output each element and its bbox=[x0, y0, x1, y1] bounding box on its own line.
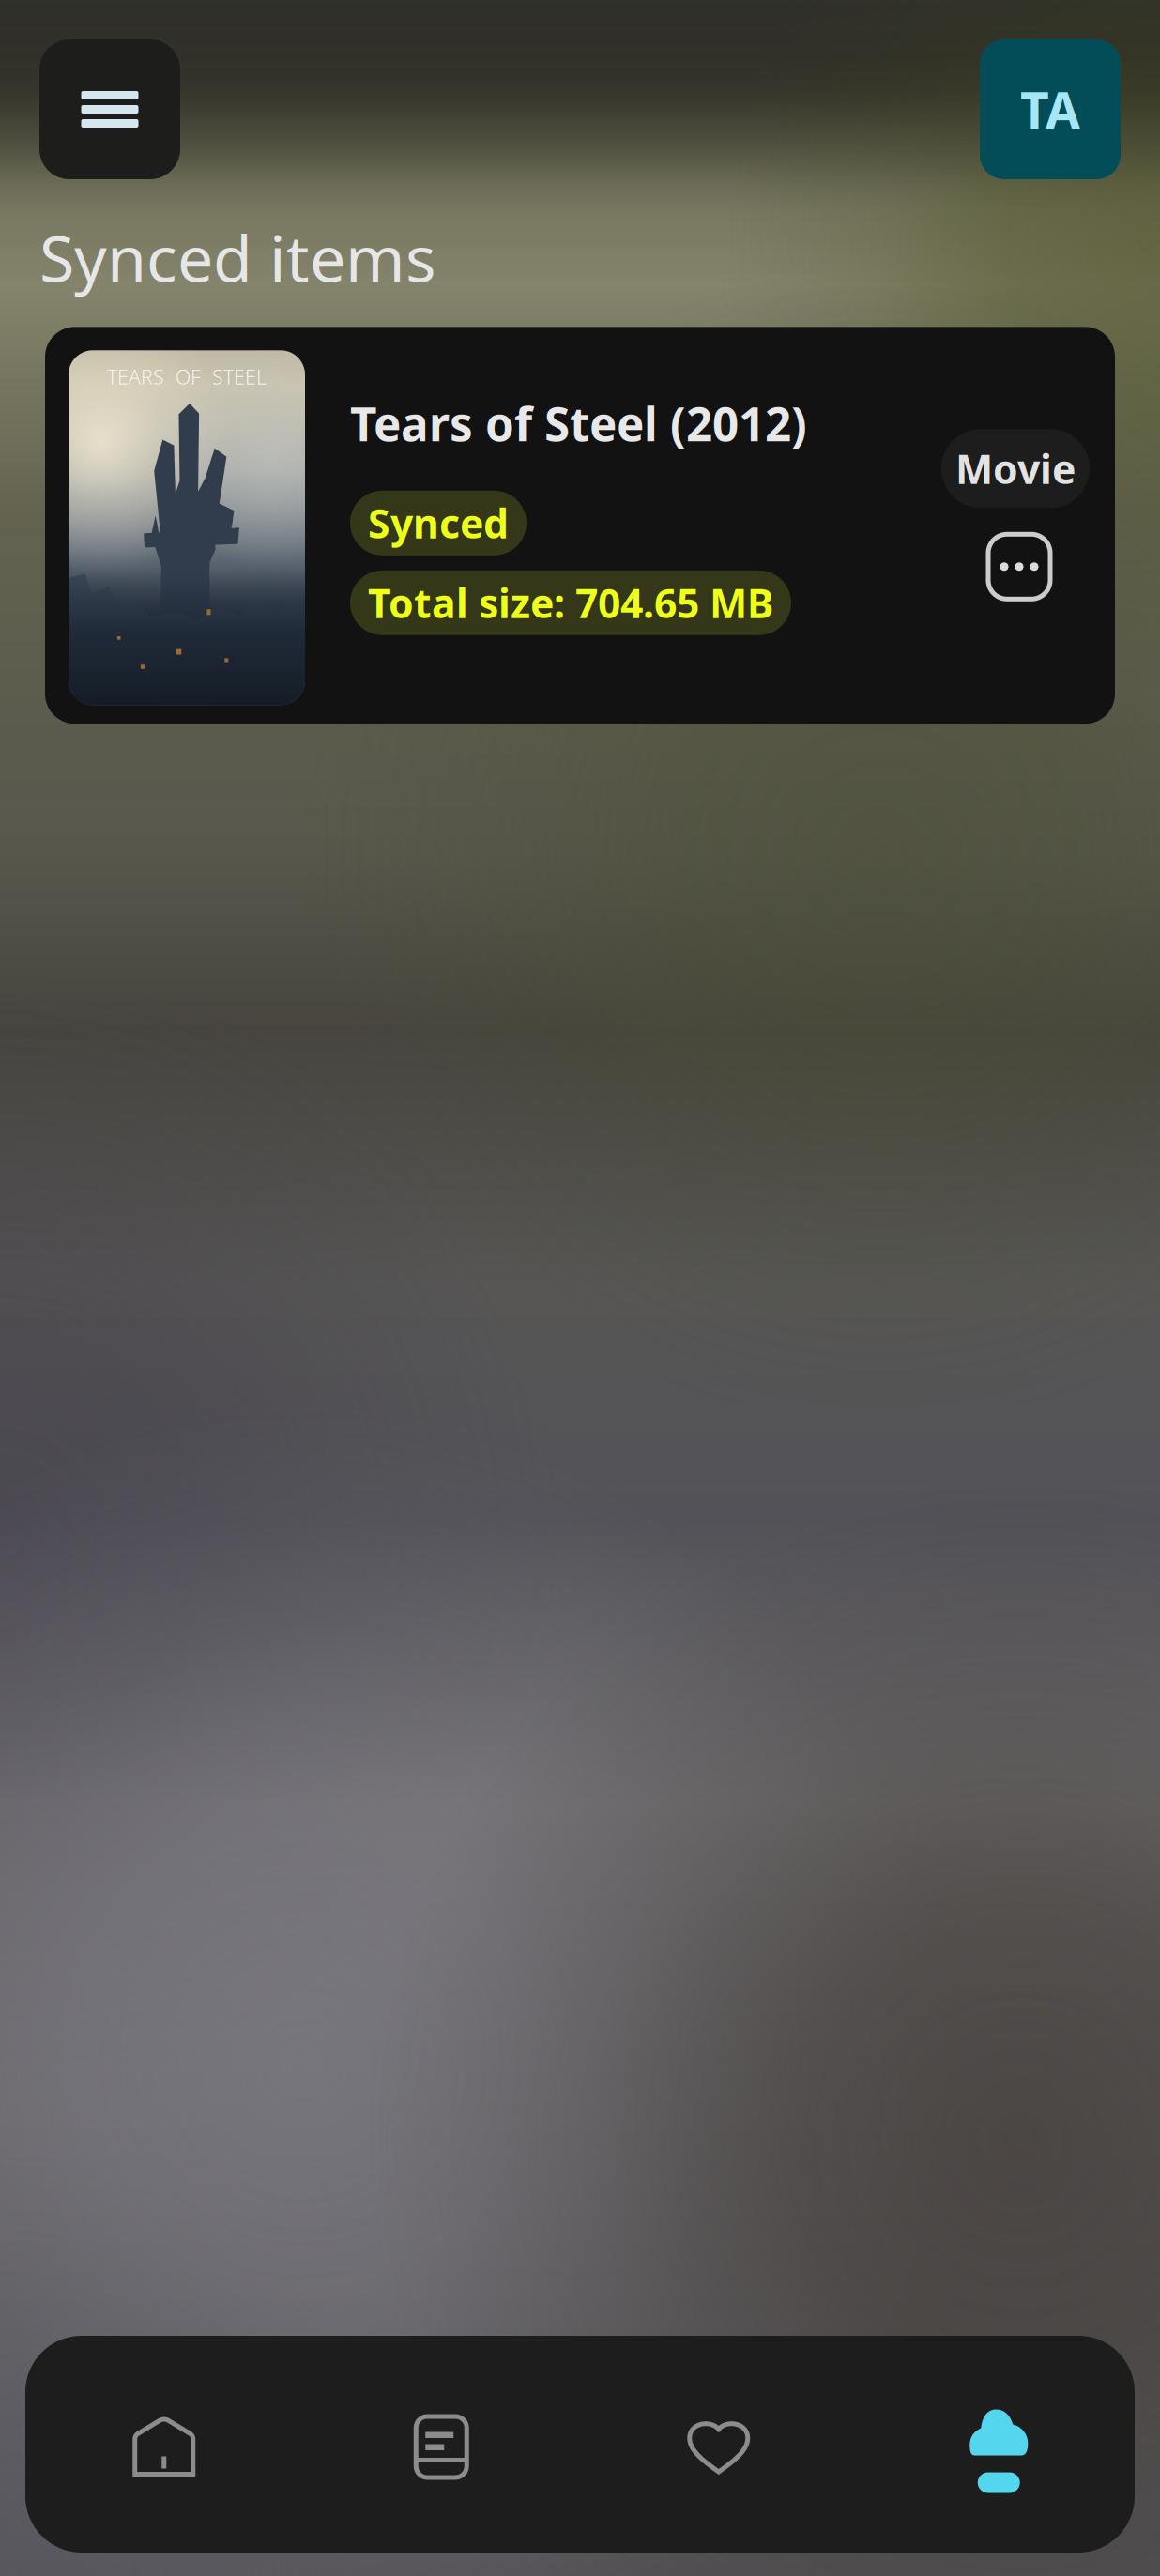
staticText: Tears of Steel (2012) bbox=[350, 393, 807, 454]
button[interactable]: Library bbox=[303, 2336, 580, 2553]
staticText: TA bbox=[1020, 76, 1080, 143]
staticText: TEARS OF STEEL bbox=[107, 363, 267, 390]
button[interactable]: TEARS OF STEEL bbox=[45, 327, 1115, 724]
button[interactable]: Account bbox=[980, 39, 1121, 179]
staticText: Movie bbox=[955, 442, 1076, 495]
staticText: Synced items bbox=[39, 215, 436, 300]
staticText: Total size: 704.65 MB bbox=[368, 576, 773, 629]
button[interactable]: Home bbox=[25, 2336, 303, 2553]
button[interactable]: Synced items bbox=[857, 2336, 1135, 2553]
button[interactable]: Menu bbox=[39, 39, 180, 179]
staticText: Synced bbox=[368, 496, 509, 550]
button[interactable]: Favourites bbox=[580, 2336, 857, 2553]
